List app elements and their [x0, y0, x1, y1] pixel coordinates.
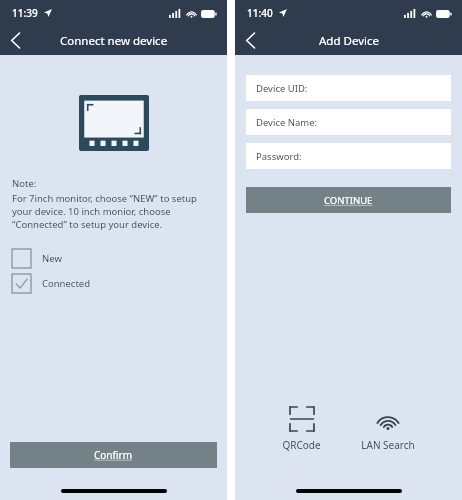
staticText: Add Device — [319, 33, 379, 49]
staticText: For 7inch monitor, choose “NEW” to setup… — [12, 192, 215, 231]
button[interactable]: LAN Search — [351, 407, 425, 456]
button[interactable]: Back — [235, 26, 265, 55]
button[interactable]: Back — [0, 26, 30, 55]
staticText: Confirm — [94, 448, 133, 462]
staticText: Connect new device — [60, 33, 168, 49]
staticText: New — [42, 252, 62, 265]
button[interactable]: Connected — [12, 274, 215, 293]
button[interactable]: QRCode — [272, 403, 331, 456]
staticText: Connected — [42, 277, 91, 290]
staticText: CONTINUE — [324, 194, 373, 207]
staticText: LAN Search — [361, 438, 415, 452]
staticText: Device UID: — [256, 82, 308, 95]
button[interactable]: CONTINUE — [246, 187, 451, 213]
button[interactable]: Confirm — [10, 442, 217, 468]
staticText: 11:40 — [247, 6, 273, 20]
button[interactable]: Device Name: — [246, 109, 451, 135]
button[interactable]: Device UID: — [246, 75, 451, 101]
button[interactable]: New — [12, 249, 215, 268]
staticText: Device Name: — [256, 116, 318, 129]
staticText: Note: — [12, 177, 37, 190]
staticText: QRCode — [282, 438, 321, 452]
staticText: 11:39 — [12, 6, 38, 20]
button[interactable]: Password: — [246, 143, 451, 169]
staticText: Password: — [256, 150, 302, 163]
